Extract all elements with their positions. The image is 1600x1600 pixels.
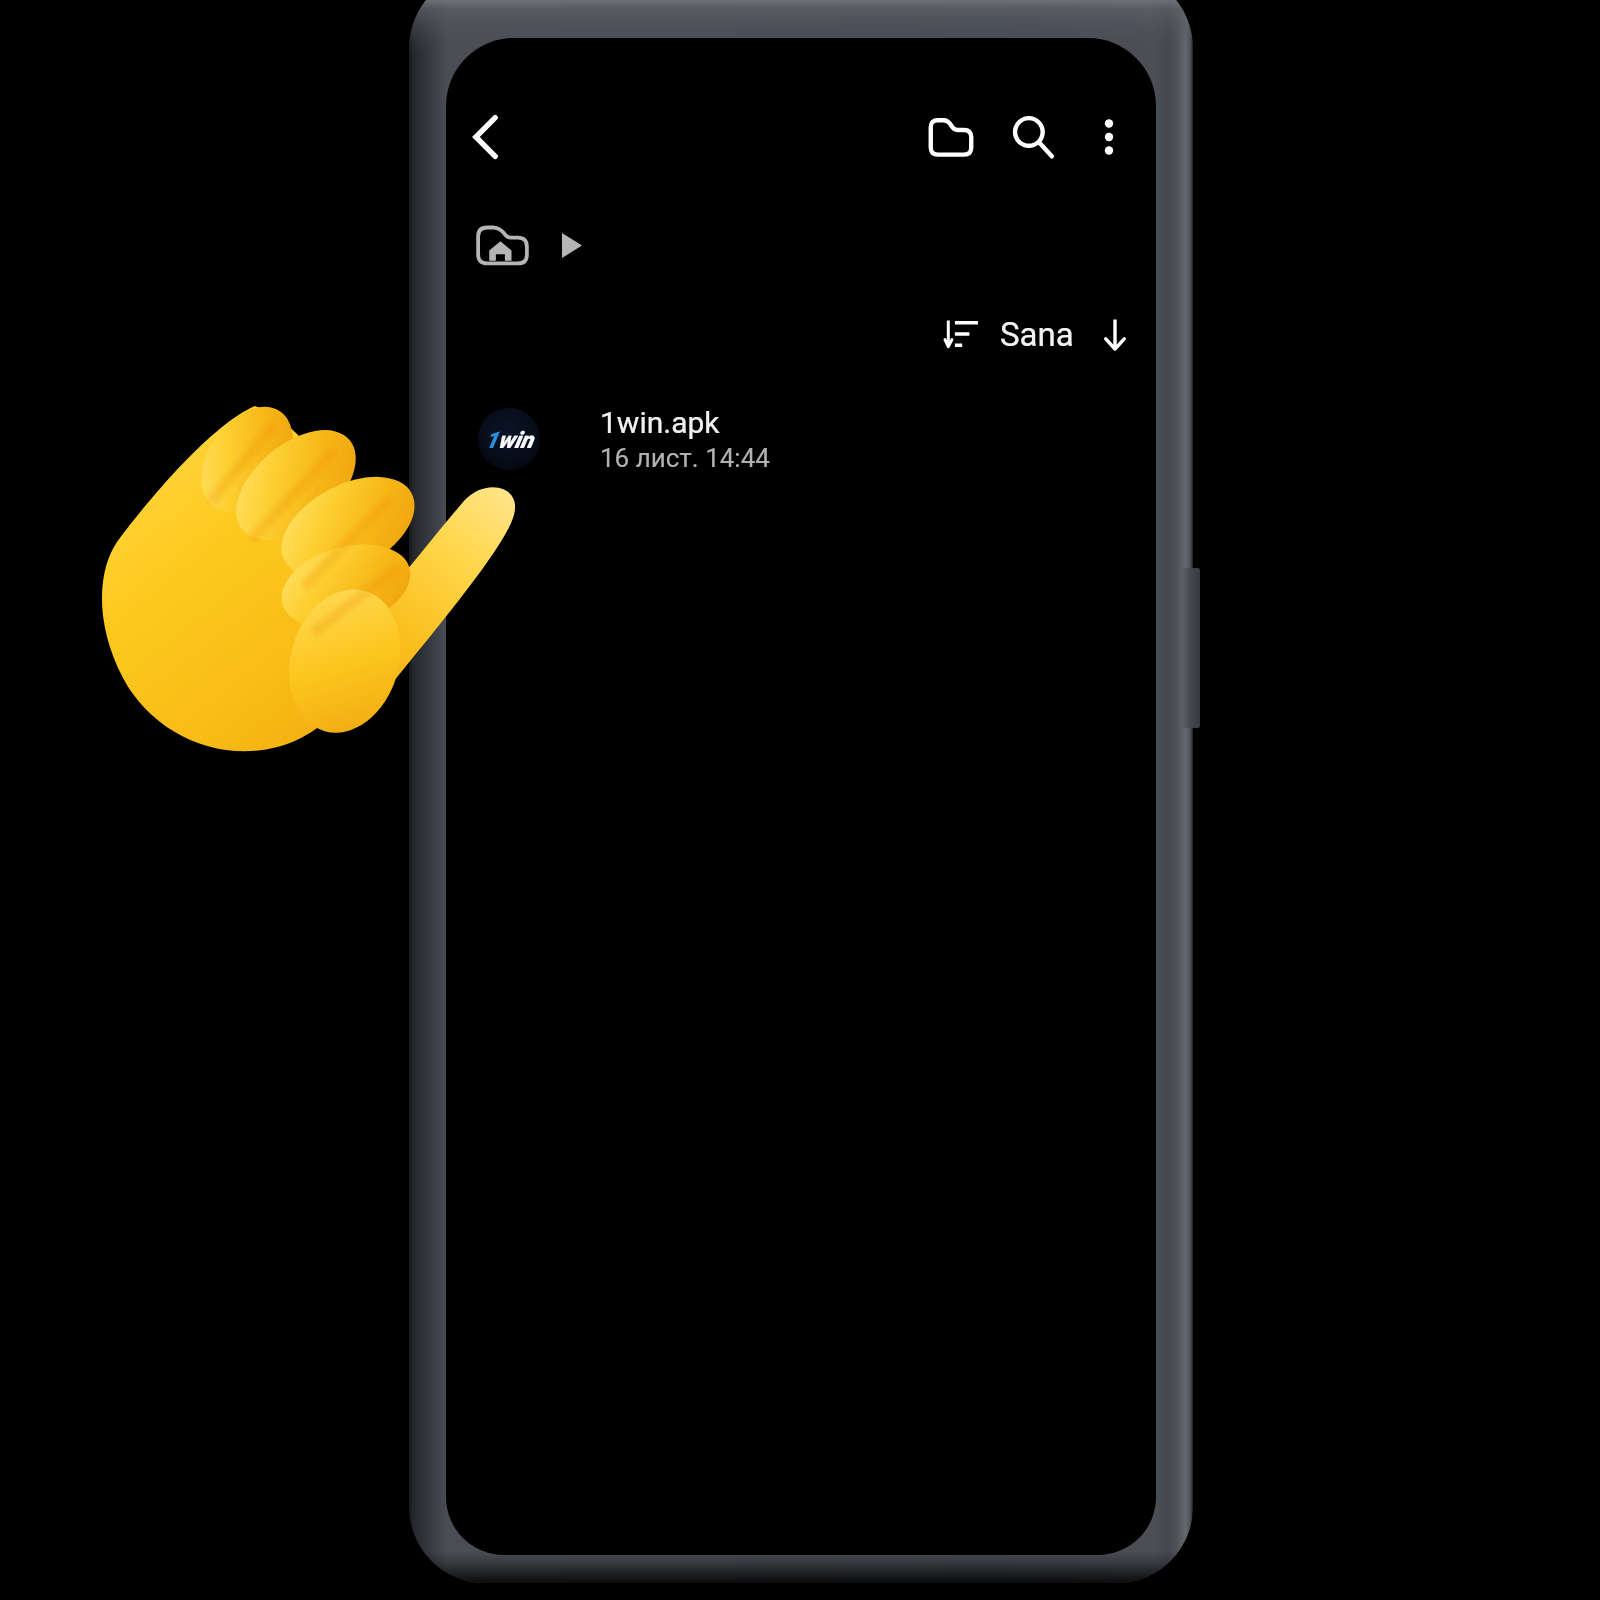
staticText: 1 <box>485 427 498 454</box>
button[interactable]: Sana <box>936 304 1126 364</box>
staticText: win <box>498 427 533 454</box>
button[interactable]: More options <box>1069 97 1149 177</box>
staticText: Sana <box>1000 315 1074 354</box>
button[interactable]: Home folder <box>476 222 529 268</box>
staticText: 1win.apk <box>600 405 720 440</box>
button[interactable]: Search <box>993 97 1073 177</box>
button[interactable]: Expand path <box>549 220 595 270</box>
button[interactable]: 1 <box>446 390 1156 488</box>
button[interactable]: New folder <box>911 97 991 177</box>
staticText: 16 лист. 14:44 <box>600 443 770 473</box>
button[interactable]: Back <box>446 97 526 177</box>
